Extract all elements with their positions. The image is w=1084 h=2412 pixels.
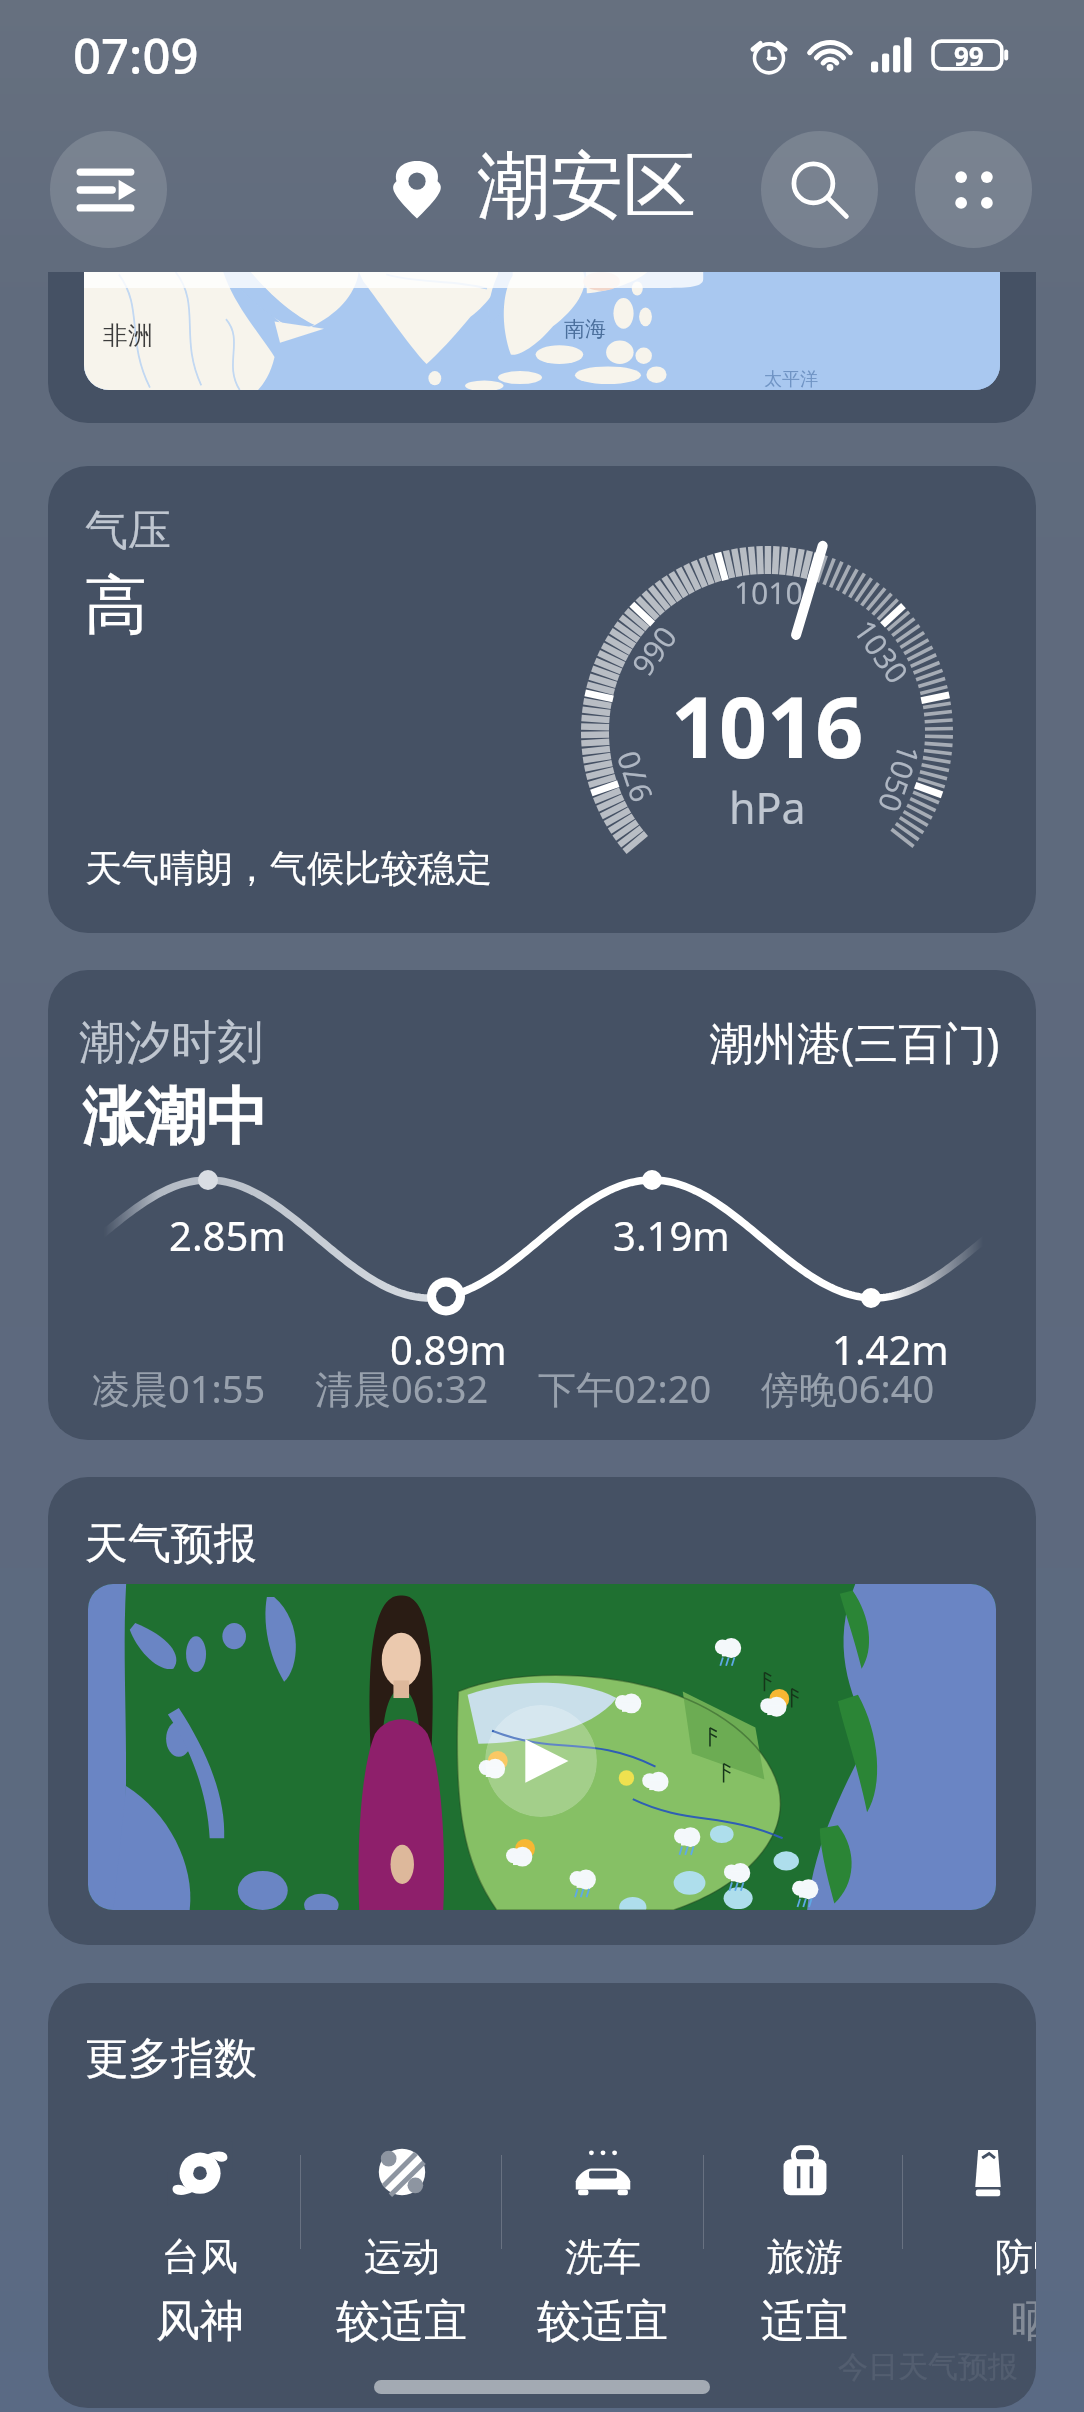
staticText: 1.42m [832,1322,949,1376]
staticText: 下午02:20 [538,1362,712,1414]
button[interactable]: 气压 [48,466,1036,933]
staticText: 0.89m [390,1322,507,1376]
staticText: 潮汐时刻 [79,1014,263,1072]
staticText: 傍晚06:40 [761,1362,935,1414]
button[interactable]: Menu [50,131,167,248]
staticText: hPa [729,778,806,837]
staticText: 适宜 [761,2294,849,2349]
staticText: 台风 [162,2233,238,2281]
staticText: 涨潮中 [82,1078,268,1156]
button[interactable]: 台风 [100,2143,300,2378]
button[interactable]: 天气预报 [48,1477,1036,1945]
staticText: 990 [622,617,686,684]
staticText: 今日天气预报 [838,2348,1018,2386]
staticText: 洗车 [565,2233,641,2281]
button[interactable]: Search [761,131,878,248]
button[interactable]: 洗车 [503,2143,703,2378]
staticText: 较适宜 [537,2294,669,2349]
button[interactable]: More options [915,131,1032,248]
staticText: 天气晴朗，气候比较稳定 [85,845,492,892]
staticText: 太平洋 [764,368,818,390]
staticText: 1030 [845,611,918,691]
button[interactable]: 运动 [302,2143,502,2378]
staticText: 07:09 [73,22,199,89]
button[interactable]: 非洲 [48,272,1036,423]
staticText: 运动 [364,2233,440,2281]
staticText: 风神 [156,2294,244,2349]
staticText: 较适宜 [336,2294,468,2349]
staticText: 99 [954,38,984,73]
staticText: 气压 [85,504,171,558]
staticText: 潮州港(三百门) [709,1012,1000,1072]
staticText: 1050 [869,739,930,818]
button[interactable]: Play weather forecast video [485,1705,597,1817]
staticText: 3.19m [613,1208,730,1262]
staticText: 1010 [734,572,803,613]
button[interactable]: 防晒 [933,2143,1036,2378]
staticText: 凌晨01:55 [92,1362,266,1414]
staticText: 清晨06:32 [315,1362,489,1414]
button[interactable]: 潮汐时刻 [48,970,1036,1440]
staticText: 更多指数 [85,2032,257,2086]
staticText: 防晒 [995,2233,1036,2281]
staticText: 970 [606,745,662,808]
staticText: 2.85m [169,1208,286,1262]
staticText: 南海 [564,316,606,342]
staticText: 天气预报 [85,1517,257,1571]
button[interactable]: 潮安区 [393,141,696,233]
staticText: 晒 [1011,2294,1036,2349]
staticText: 1016 [671,668,864,782]
staticText: 高 [84,565,148,646]
staticText: 非洲 [103,320,153,351]
button[interactable]: 旅游 [705,2143,905,2378]
staticText: 旅游 [767,2233,843,2281]
staticText: 潮安区 [477,141,696,233]
